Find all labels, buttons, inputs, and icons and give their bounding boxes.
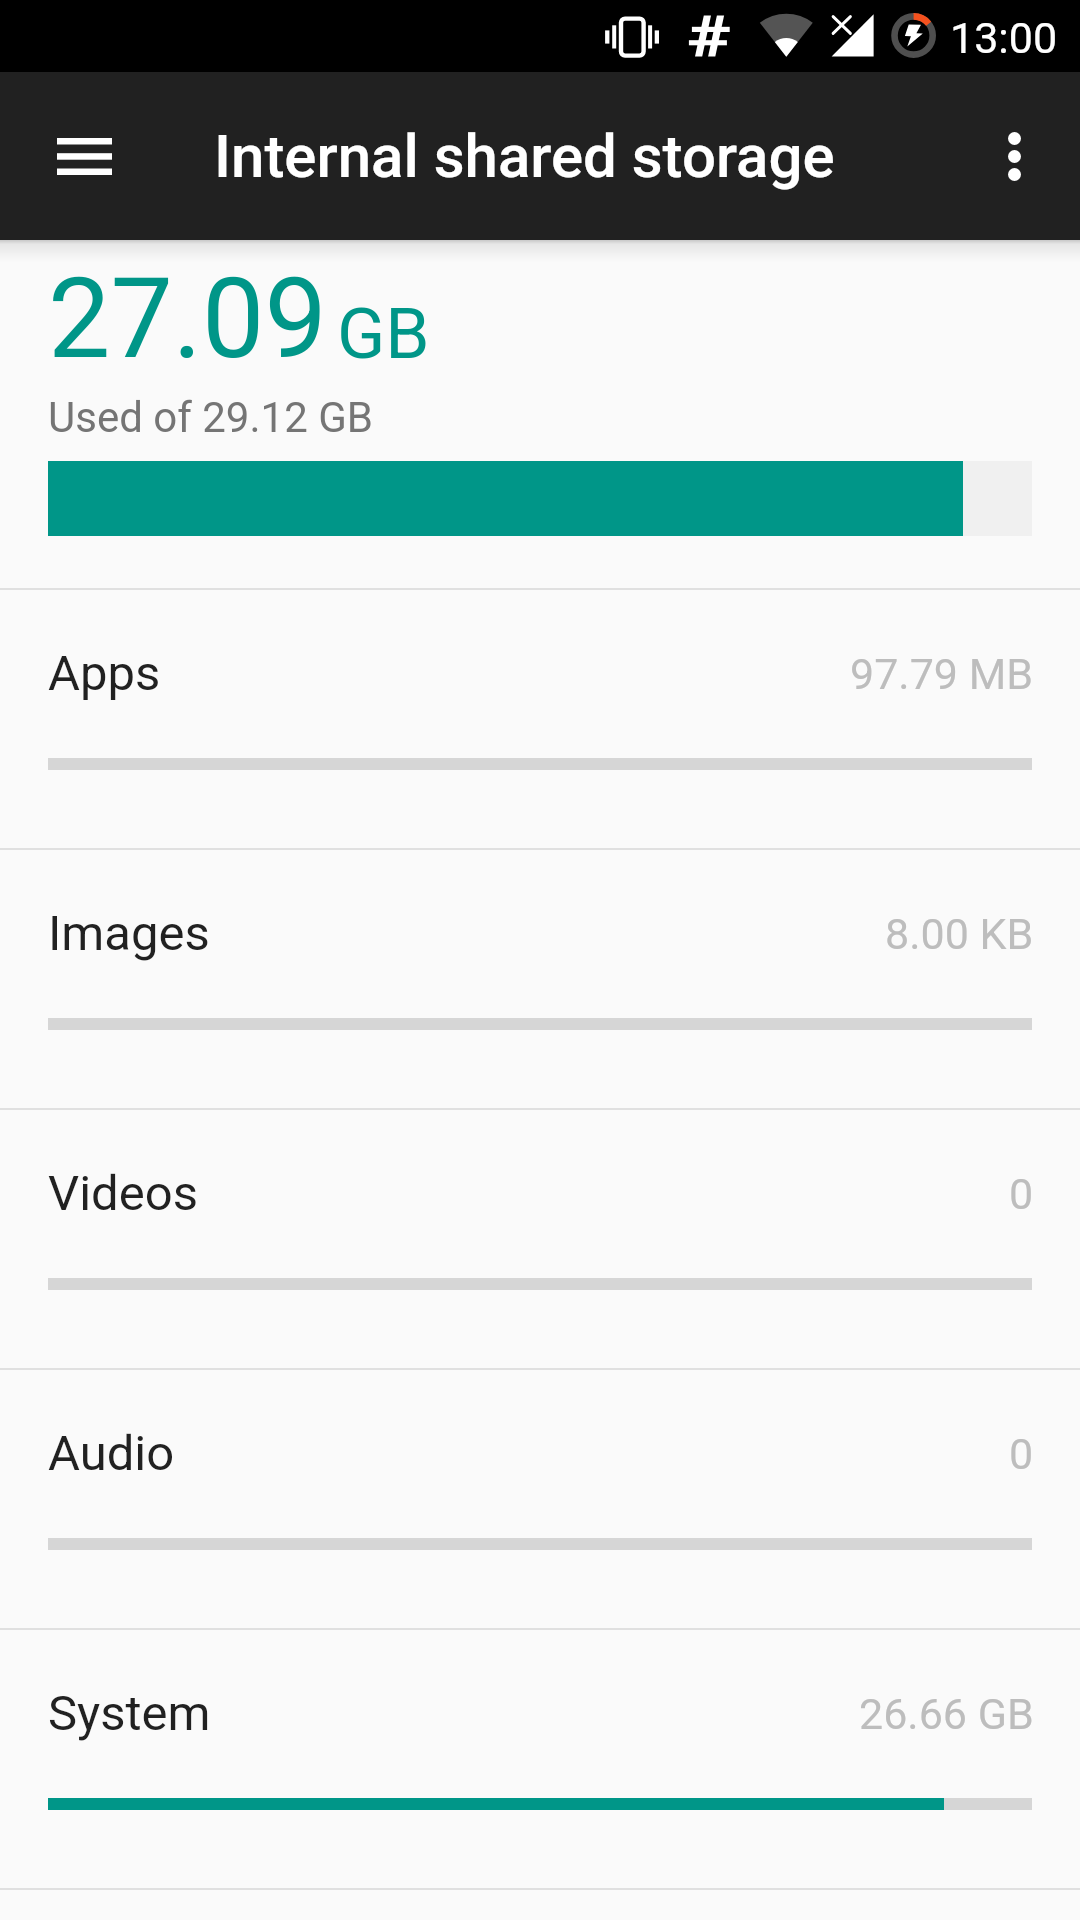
button[interactable]: System [0,1629,1080,1889]
staticText: 0 [1009,1169,1034,1219]
staticText: 97.79 MB [850,649,1034,699]
staticText: Used of 29.12 GB [48,393,373,442]
staticText: GB [337,292,430,375]
staticText: Images [48,905,210,962]
staticText: Videos [48,1165,198,1222]
staticText: Internal shared storage [214,121,835,191]
staticText: Audio [48,1425,175,1482]
button[interactable]: Images [0,849,1080,1109]
staticText: 8.00 KB [885,909,1034,959]
button[interactable]: Open navigation drawer [0,72,168,240]
button[interactable]: Videos [0,1109,1080,1369]
staticText: System [48,1685,211,1742]
button[interactable]: Apps [0,589,1080,849]
staticText: 26.66 GB [859,1689,1034,1739]
button[interactable]: More options [948,72,1080,240]
staticText: Apps [48,645,161,702]
staticText: 27.09 [48,254,327,384]
button[interactable]: Audio [0,1369,1080,1629]
staticText: 0 [1009,1429,1034,1479]
staticText: 13:00 [950,13,1058,63]
